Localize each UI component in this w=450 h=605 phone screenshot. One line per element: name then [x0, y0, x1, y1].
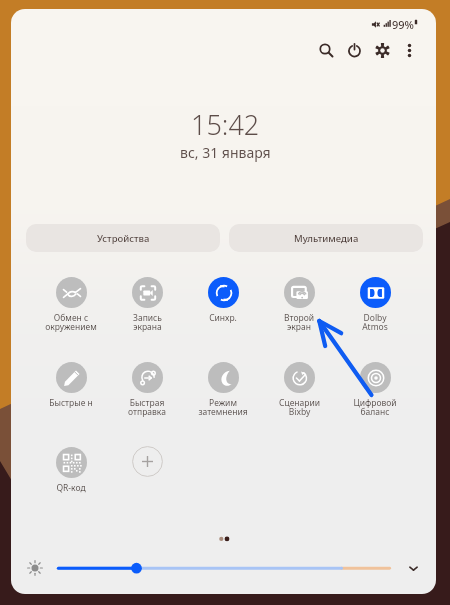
staticText: Быстрая отправка — [128, 397, 166, 417]
staticText: Второй экран — [284, 312, 314, 332]
staticText: Запись экрана — [133, 312, 162, 332]
button[interactable]: Обмен с окружением — [43, 277, 99, 332]
staticText: 99% — [392, 17, 414, 32]
button[interactable]: Settings — [371, 39, 394, 62]
button[interactable]: Сценарии Bixby — [271, 362, 327, 417]
button[interactable]: Быстрая отправка — [119, 362, 175, 417]
staticText: Режим затемнения — [198, 397, 248, 417]
staticText: Синхр. — [209, 312, 237, 324]
button[interactable]: Brightness — [27, 560, 43, 576]
staticText: Обмен с окружением — [45, 312, 97, 332]
staticText: Сценарии Bixby — [279, 397, 320, 417]
staticText: Dolby Atmos — [362, 312, 388, 332]
staticText: Мультимедиа — [294, 232, 359, 245]
button[interactable]: Быстрые н — [43, 362, 99, 409]
button[interactable]: Search — [315, 39, 338, 62]
button[interactable]: Синхр. — [195, 277, 251, 324]
button[interactable]: Цифровой баланс — [347, 362, 403, 417]
button[interactable]: Режим затемнения — [195, 362, 251, 417]
button[interactable]: Dolby Atmos — [347, 277, 403, 332]
button[interactable]: Power — [343, 39, 366, 62]
button[interactable]: Мультимедиа — [229, 224, 423, 252]
button[interactable]: QR-код — [43, 447, 99, 494]
button[interactable]: Add — [132, 446, 163, 477]
staticText: Цифровой баланс — [353, 397, 397, 417]
button[interactable]: Устройства — [26, 224, 220, 252]
button[interactable]: Brightness slider — [57, 558, 391, 578]
button[interactable]: Запись экрана — [119, 277, 175, 332]
staticText: вс, 31 января — [180, 143, 271, 162]
button[interactable]: More options — [398, 39, 421, 62]
staticText: Быстрые н — [49, 397, 93, 409]
button[interactable]: Expand — [403, 558, 423, 578]
staticText: 15:42 — [191, 106, 260, 143]
button[interactable]: Второй экран — [271, 277, 327, 332]
staticText: QR-код — [56, 482, 86, 494]
staticText: Устройства — [97, 232, 150, 245]
